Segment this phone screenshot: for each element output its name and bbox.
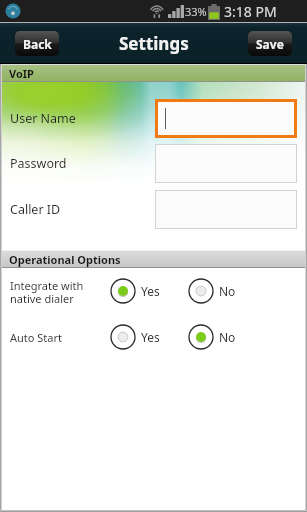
staticText: Integrate with native dialer xyxy=(10,278,84,304)
staticText: Back xyxy=(23,36,52,52)
button[interactable] xyxy=(155,190,297,229)
staticText: 33% xyxy=(185,4,207,19)
staticText: No xyxy=(219,283,236,299)
staticText: Caller ID xyxy=(10,201,155,218)
staticText: Yes xyxy=(141,283,160,299)
button[interactable]: No xyxy=(188,278,236,304)
staticText: Settings xyxy=(119,32,189,55)
staticText: Operational Options xyxy=(9,252,121,267)
button[interactable]: Yes xyxy=(110,278,160,304)
staticText: Yes xyxy=(141,329,160,345)
button[interactable]: Save xyxy=(248,31,292,56)
staticText: User Name xyxy=(10,110,155,127)
button[interactable] xyxy=(155,144,297,183)
staticText: Password xyxy=(10,155,155,172)
button[interactable]: Yes xyxy=(110,324,160,350)
button[interactable]: No xyxy=(188,324,236,350)
button[interactable] xyxy=(155,99,297,138)
staticText: 3:18 PM xyxy=(224,2,277,21)
staticText: Auto Start xyxy=(10,330,63,345)
button[interactable]: Back xyxy=(15,31,59,56)
staticText: No xyxy=(219,329,236,345)
staticText: VoIP xyxy=(9,66,34,81)
staticText: Save xyxy=(256,36,284,52)
